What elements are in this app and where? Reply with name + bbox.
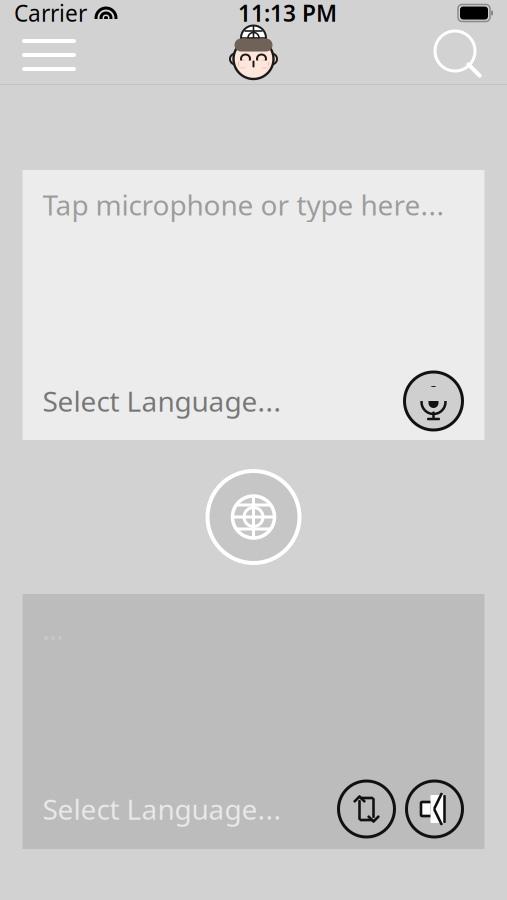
button[interactable]: Select Language... [42,382,281,420]
staticText: Tap microphone or type here... [42,186,444,223]
staticText: Select Language... [42,382,281,420]
button[interactable]: Home [222,26,284,84]
button[interactable]: Record with microphone [402,370,464,432]
staticText: Select Language... [42,790,281,828]
button[interactable]: Play translation [404,779,464,839]
button[interactable]: Menu [10,26,88,84]
staticText: 11:13 PM [238,0,337,28]
button[interactable]: Select Language... [42,790,281,828]
button[interactable]: Swap languages [336,779,396,839]
button[interactable]: Translate [205,469,301,565]
staticText: Carrier [14,0,87,28]
button[interactable]: Search [419,26,497,84]
